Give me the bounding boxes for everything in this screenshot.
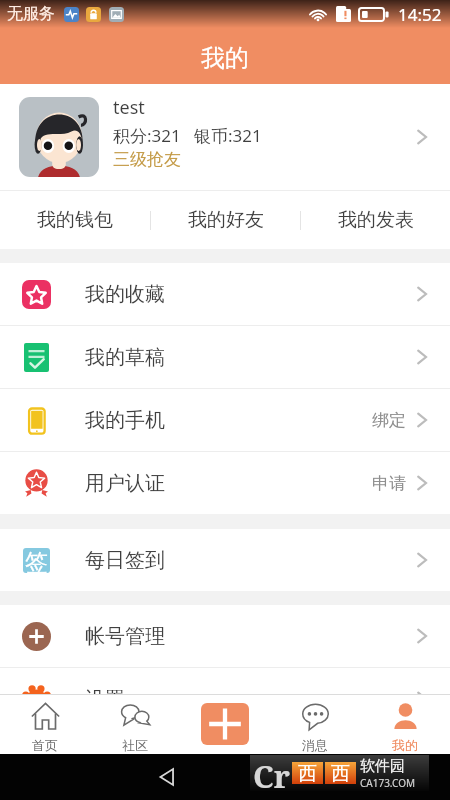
staticText: 我的好友 (188, 208, 264, 232)
button[interactable]: 用户认证 (0, 452, 450, 514)
staticText: 三级抢友 (113, 149, 181, 170)
staticText: 14:52 (398, 3, 442, 26)
staticText: 西 (331, 762, 350, 784)
staticText: 签 (25, 548, 48, 573)
staticText: 消息 (302, 737, 328, 753)
staticText: Cr (253, 755, 290, 791)
staticText: 我的 (201, 43, 249, 73)
staticText: 无服务 (7, 4, 55, 24)
staticText: 西 (298, 762, 317, 784)
button[interactable]: Back (112, 754, 224, 800)
staticText: 我的收藏 (85, 282, 165, 307)
staticText: 我的手机 (85, 408, 165, 433)
staticText: 帐号管理 (85, 624, 165, 649)
staticText: 设置 (85, 687, 125, 712)
button[interactable]: 我的草稿 (0, 326, 450, 388)
staticText: 我的草稿 (85, 345, 165, 370)
staticText: 软件园 (360, 757, 405, 776)
button[interactable]: 我的收藏 (0, 263, 450, 325)
button[interactable]: 帐号管理 (0, 605, 450, 667)
button[interactable]: 签 (0, 529, 450, 591)
staticText: 我的 (392, 737, 418, 753)
button[interactable]: 我的手机 (0, 389, 450, 451)
staticText: 积分:321 银币:321 (113, 124, 262, 147)
staticText: test (113, 95, 145, 120)
staticText: 社区 (122, 737, 148, 753)
staticText: 我的发表 (338, 208, 414, 232)
staticText: 我的钱包 (37, 208, 113, 232)
staticText: 用户认证 (85, 471, 165, 496)
staticText: 每日签到 (85, 548, 165, 573)
button[interactable]: 我的好友 (151, 191, 300, 249)
button[interactable]: test (0, 84, 450, 190)
button[interactable]: 设置 (0, 668, 450, 730)
button[interactable]: 我的钱包 (0, 191, 150, 249)
staticText: CA173.COM (360, 776, 416, 790)
button[interactable]: 我的发表 (301, 191, 450, 249)
staticText: 首页 (32, 737, 58, 753)
button[interactable]: 消息 (270, 694, 360, 754)
staticText: 绑定 (372, 410, 406, 431)
button[interactable]: Home (224, 754, 337, 800)
staticText: 申请 (372, 473, 406, 494)
button[interactable]: 发布 (201, 703, 249, 745)
button[interactable]: 社区 (90, 694, 180, 754)
button[interactable]: 我的 (360, 694, 450, 754)
button[interactable]: 首页 (0, 694, 90, 754)
